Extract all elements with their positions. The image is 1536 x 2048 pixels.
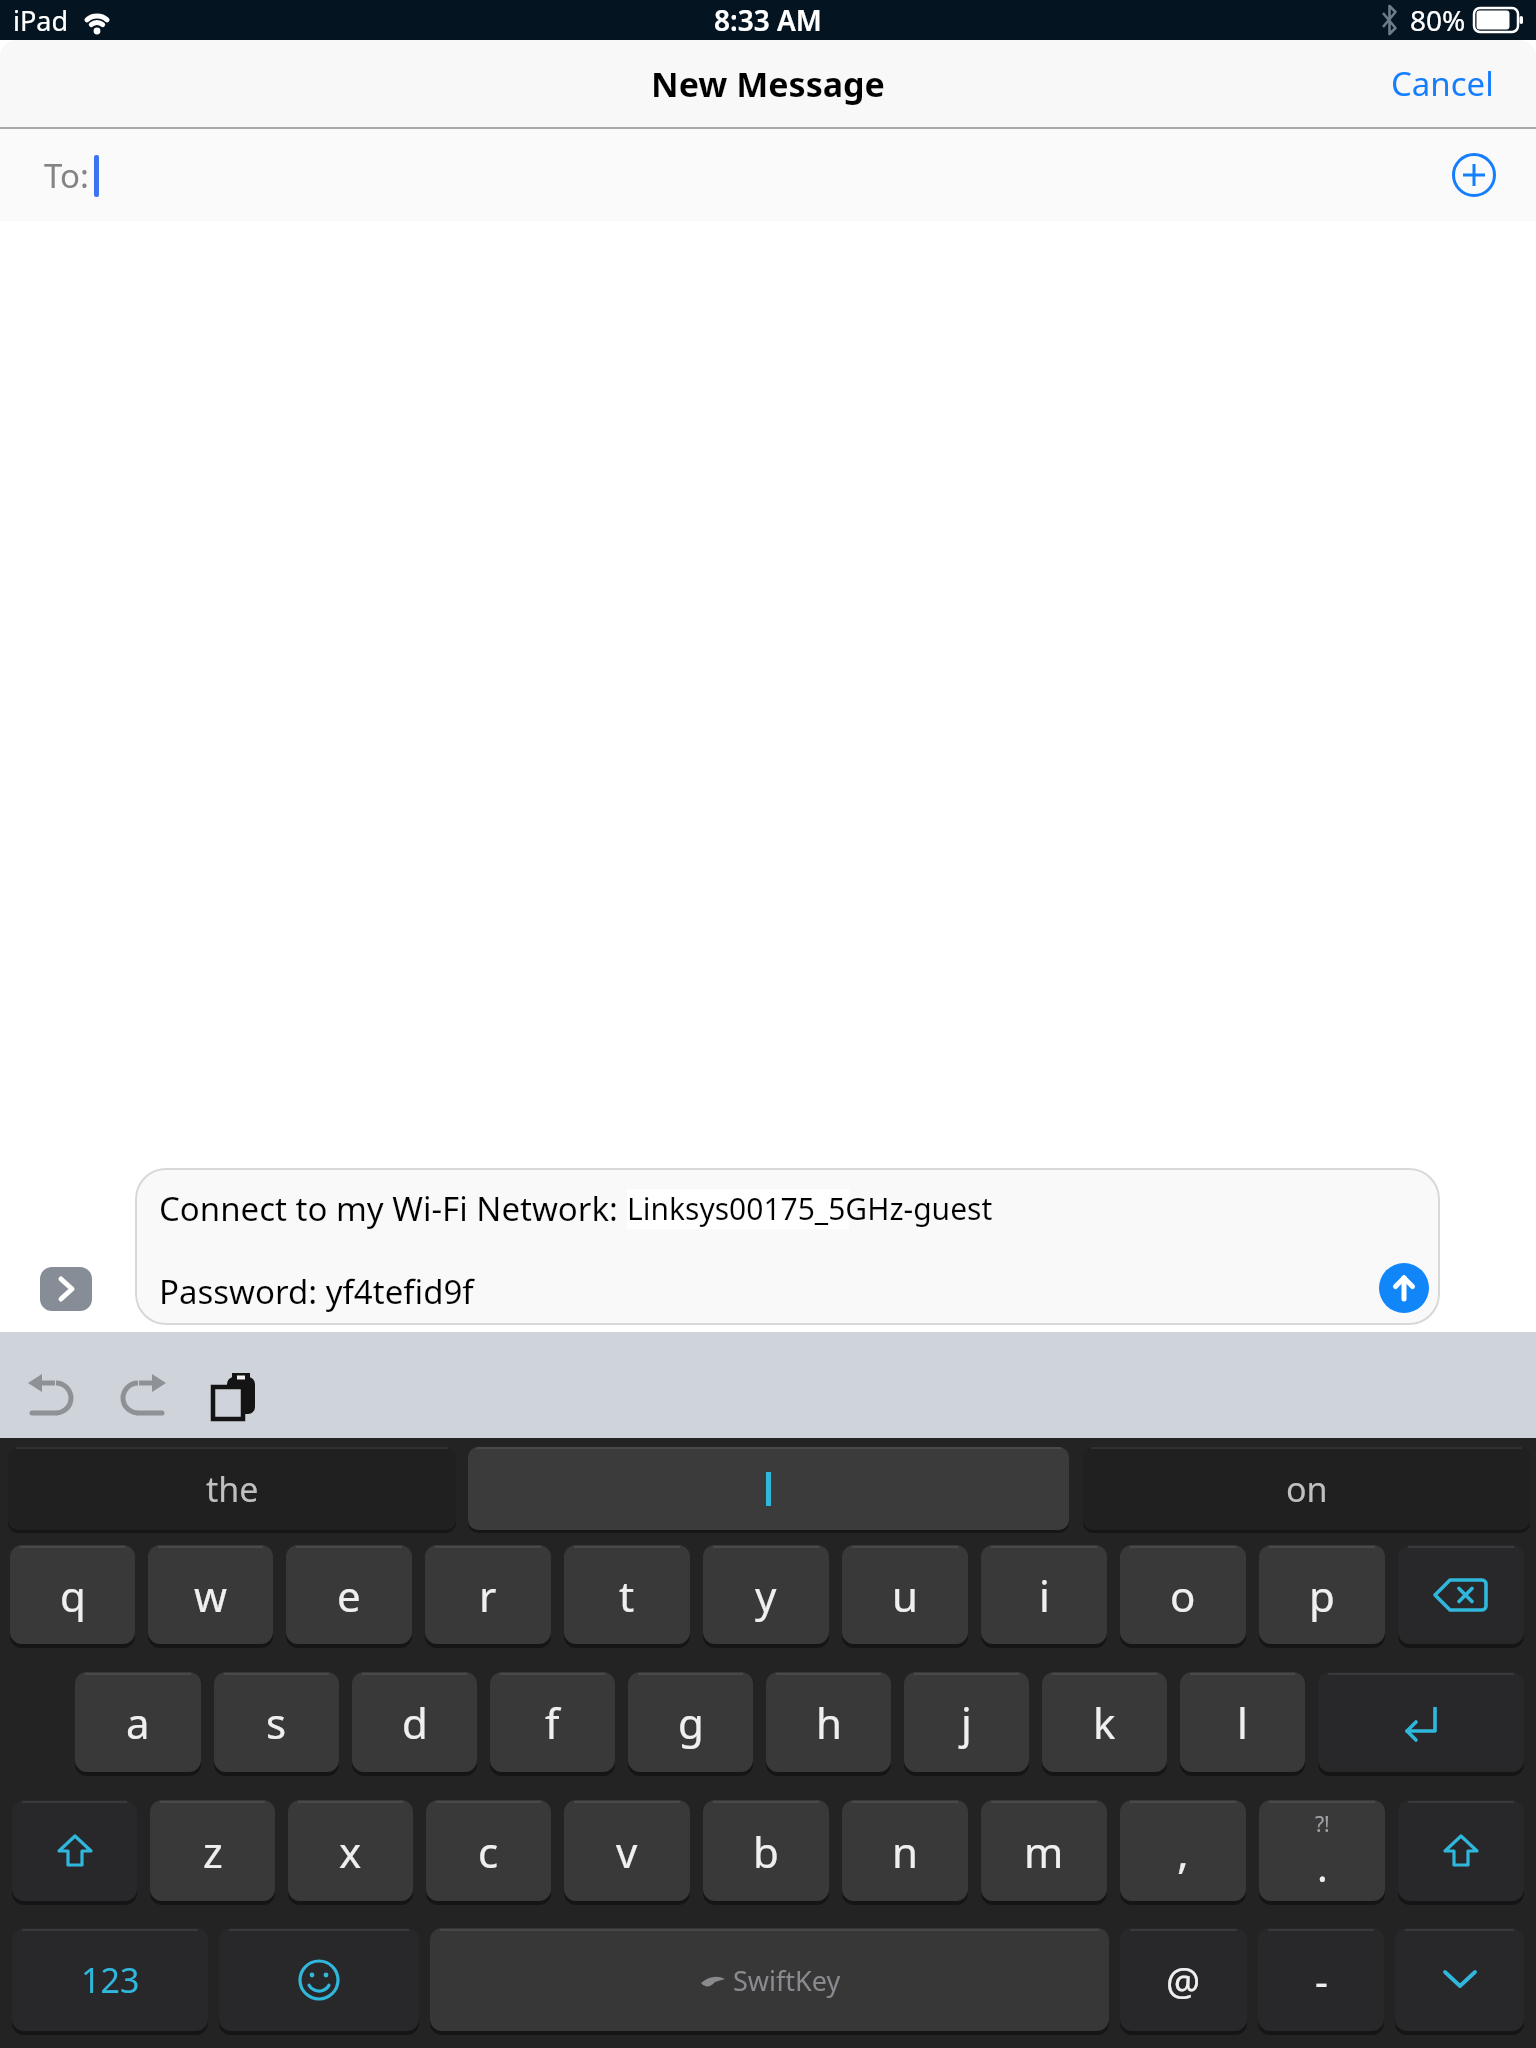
button[interactable]: c <box>426 1800 551 1905</box>
staticText: - <box>1315 1953 1328 2007</box>
button[interactable]: h <box>766 1672 891 1776</box>
button[interactable]: Cancel <box>1391 61 1494 106</box>
button[interactable]: v <box>564 1800 690 1905</box>
button[interactable] <box>211 1373 257 1421</box>
button[interactable] <box>1318 1672 1524 1776</box>
staticText: 123 <box>81 1957 140 2003</box>
staticText: b <box>753 1823 779 1880</box>
button[interactable]: k <box>1042 1672 1167 1776</box>
button[interactable]: To: <box>0 129 1536 221</box>
staticText: New Message <box>651 61 885 107</box>
button[interactable] <box>1398 1800 1524 1905</box>
button[interactable]: d <box>352 1672 477 1776</box>
staticText: v <box>616 1823 638 1880</box>
staticText: ?! <box>1315 1810 1330 1839</box>
button[interactable]: r <box>425 1545 551 1648</box>
button[interactable]: i <box>981 1545 1107 1648</box>
button[interactable] <box>219 1928 419 2035</box>
staticText: Linksys00175_5GHz-guest <box>627 1188 993 1229</box>
staticText: iPad <box>13 2 69 39</box>
button[interactable]: t <box>564 1545 690 1648</box>
staticText: i <box>1039 1567 1050 1624</box>
button[interactable]: u <box>842 1545 968 1648</box>
button[interactable]: ?! <box>1259 1800 1385 1905</box>
staticText: m <box>1024 1823 1064 1880</box>
staticText: k <box>1093 1694 1116 1751</box>
staticText: c <box>478 1823 499 1880</box>
staticText: , <box>1177 1821 1189 1881</box>
staticText: h <box>816 1694 842 1751</box>
button[interactable]: on <box>1083 1447 1530 1533</box>
button[interactable]: p <box>1259 1545 1385 1648</box>
button[interactable]: 123 <box>12 1928 208 2035</box>
staticText: Connect to my Wi-Fi Network: <box>159 1186 627 1231</box>
staticText: . <box>1317 1839 1328 1893</box>
button[interactable]: @ <box>1120 1928 1247 2035</box>
staticText: r <box>479 1567 497 1624</box>
button[interactable] <box>1395 1928 1524 2035</box>
staticText: z <box>203 1823 223 1880</box>
button[interactable]: g <box>628 1672 753 1776</box>
staticText: o <box>1170 1567 1196 1624</box>
button[interactable]: o <box>1120 1545 1246 1648</box>
staticText: d <box>402 1694 428 1751</box>
staticText: g <box>678 1694 704 1751</box>
staticText: To: <box>44 153 89 198</box>
button[interactable]: s <box>214 1672 339 1776</box>
staticText: f <box>545 1694 560 1751</box>
staticText: j <box>961 1694 972 1751</box>
staticText: @ <box>1166 1954 1201 2006</box>
button[interactable] <box>468 1447 1069 1533</box>
staticText: a <box>126 1694 150 1751</box>
staticText: u <box>892 1567 918 1624</box>
button[interactable] <box>1398 1545 1524 1648</box>
button[interactable]: SwiftKey <box>430 1928 1109 2035</box>
staticText: t <box>619 1567 635 1624</box>
staticText: 8:33 AM <box>714 1 822 39</box>
staticText: q <box>60 1567 86 1624</box>
button[interactable]: the <box>8 1447 456 1533</box>
button[interactable]: y <box>703 1545 829 1648</box>
button[interactable] <box>40 1267 92 1311</box>
button[interactable]: l <box>1180 1672 1305 1776</box>
button[interactable]: q <box>10 1545 135 1648</box>
staticText: on <box>1286 1466 1328 1512</box>
staticText: s <box>266 1694 287 1751</box>
button[interactable] <box>12 1800 137 1905</box>
staticText: the <box>206 1466 259 1512</box>
staticText: y <box>755 1567 777 1624</box>
button[interactable] <box>1379 1263 1429 1313</box>
staticText: SwiftKey <box>733 1962 841 1999</box>
staticText: e <box>337 1567 361 1624</box>
staticText: Cancel <box>1391 61 1494 106</box>
button[interactable]: x <box>288 1800 413 1905</box>
staticText: p <box>1309 1567 1335 1624</box>
button[interactable]: j <box>904 1672 1029 1776</box>
button[interactable]: a <box>75 1672 201 1776</box>
staticText: 80% <box>1410 1 1466 39</box>
button[interactable]: z <box>150 1800 275 1905</box>
staticText: w <box>194 1567 228 1624</box>
button[interactable] <box>120 1374 166 1420</box>
button[interactable]: m <box>981 1800 1107 1905</box>
button[interactable]: f <box>490 1672 615 1776</box>
button[interactable]: e <box>286 1545 412 1648</box>
staticText: l <box>1237 1694 1248 1751</box>
button[interactable]: w <box>148 1545 273 1648</box>
button[interactable]: b <box>703 1800 829 1905</box>
button[interactable]: , <box>1120 1800 1246 1905</box>
button[interactable]: - <box>1258 1928 1384 2035</box>
staticText: x <box>339 1823 362 1880</box>
button[interactable]: n <box>842 1800 968 1905</box>
staticText: n <box>892 1823 918 1880</box>
staticText: Password: yf4tefid9f <box>159 1269 474 1314</box>
button[interactable] <box>28 1374 74 1420</box>
